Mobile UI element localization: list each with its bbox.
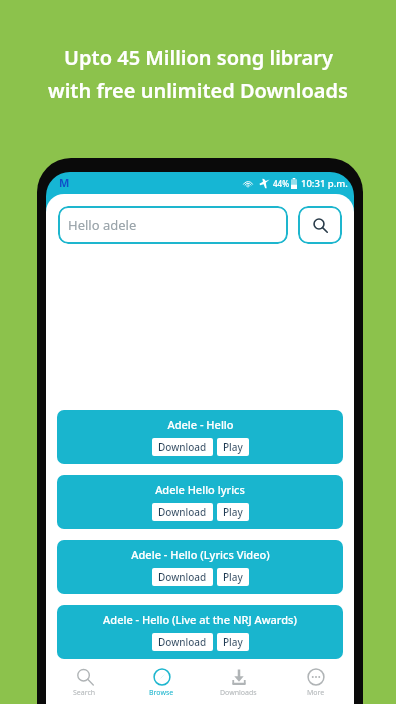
button[interactable]: Play bbox=[217, 568, 249, 586]
button[interactable]: Adele - Hello (Lyrics Video) bbox=[57, 540, 343, 594]
staticText: M bbox=[59, 175, 70, 190]
button[interactable]: Search bbox=[46, 662, 123, 704]
staticText: Hello adele bbox=[68, 216, 137, 234]
staticText: Adele - Hello (Lyrics Video) bbox=[131, 547, 270, 562]
button[interactable]: Download bbox=[152, 633, 213, 651]
staticText: More bbox=[307, 688, 325, 698]
staticText: Play bbox=[223, 505, 243, 519]
staticText: 10:31 p.m. bbox=[301, 177, 348, 190]
button[interactable]: Download bbox=[152, 568, 213, 586]
button[interactable]: Play bbox=[217, 438, 249, 456]
staticText: Download bbox=[158, 505, 207, 519]
button[interactable]: More bbox=[277, 662, 354, 704]
button[interactable]: Hello adele bbox=[58, 206, 288, 244]
staticText: Download bbox=[158, 440, 207, 454]
staticText: Search bbox=[73, 688, 96, 698]
staticText: Browse bbox=[149, 688, 174, 698]
staticText: Play bbox=[223, 635, 243, 649]
staticText: Play bbox=[223, 440, 243, 454]
button[interactable]: Adele - Hello bbox=[57, 410, 343, 464]
staticText: Adele - Hello bbox=[167, 417, 234, 432]
staticText: Download bbox=[158, 570, 207, 584]
button[interactable]: Play bbox=[217, 633, 249, 651]
staticText: with free unlimited Downloads bbox=[48, 77, 348, 104]
staticText: Download bbox=[158, 635, 207, 649]
button[interactable]: Browse bbox=[123, 662, 200, 704]
button[interactable]: Play bbox=[217, 503, 249, 521]
staticText: Adele - Hello (Live at the NRJ Awards) bbox=[103, 612, 297, 627]
staticText: Adele Hello lyrics bbox=[155, 482, 245, 497]
staticText: Play bbox=[223, 570, 243, 584]
button[interactable]: Adele Hello lyrics bbox=[57, 475, 343, 529]
staticText: 44% bbox=[273, 178, 289, 189]
staticText: Upto 45 Million song library bbox=[64, 44, 333, 71]
button[interactable]: Download bbox=[152, 438, 213, 456]
button[interactable]: Downloads bbox=[200, 662, 277, 704]
staticText: Downloads bbox=[220, 688, 257, 698]
button[interactable]: Download bbox=[152, 503, 213, 521]
button[interactable]: Adele - Hello (Live at the NRJ Awards) bbox=[57, 605, 343, 659]
button[interactable]: Search bbox=[298, 206, 342, 244]
